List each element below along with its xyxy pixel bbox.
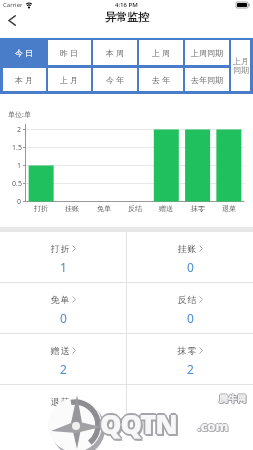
- staticText: 上 周: [152, 47, 171, 58]
- staticText: 打折: [34, 204, 48, 213]
- button[interactable]: 去 年: [139, 68, 183, 91]
- staticText: 腾牛网: [220, 393, 247, 404]
- button[interactable]: 上 周: [139, 40, 183, 65]
- button[interactable]: 上月 同期: [231, 40, 250, 91]
- button[interactable]: 打折: [0, 232, 126, 282]
- staticText: 抹零: [177, 345, 197, 356]
- staticText: 打折: [50, 243, 70, 254]
- staticText: 2: [60, 412, 67, 428]
- staticText: 腾牛网: [219, 393, 246, 404]
- staticText: 免单: [97, 204, 111, 213]
- staticText: QQTN: [99, 404, 176, 441]
- staticText: 抹零: [191, 204, 205, 213]
- button[interactable]: [4, 12, 20, 28]
- staticText: 挂账: [65, 204, 79, 213]
- button[interactable]: 免单: [0, 283, 126, 333]
- staticText: 退菜: [50, 396, 70, 407]
- button[interactable]: 本 月: [3, 68, 46, 91]
- button[interactable]: 赠送: [0, 334, 126, 384]
- staticText: 上周同期: [191, 48, 223, 58]
- staticText: .com: [197, 416, 229, 434]
- staticText: 腾牛网: [220, 394, 247, 405]
- staticText: .com: [197, 418, 229, 436]
- button[interactable]: 退菜: [0, 385, 126, 435]
- staticText: QQTN: [102, 407, 179, 444]
- button[interactable]: 去年同期: [185, 68, 229, 91]
- staticText: 4:16 PM: [115, 1, 138, 9]
- staticText: 0: [60, 310, 67, 326]
- staticText: 本 月: [15, 74, 34, 85]
- staticText: QQTN: [100, 405, 177, 442]
- staticText: QQTN: [98, 405, 175, 442]
- staticText: 0: [187, 259, 194, 275]
- staticText: 去 年: [152, 74, 171, 85]
- staticText: .com: [198, 417, 230, 435]
- staticText: 退菜: [222, 204, 236, 213]
- staticText: 1.5: [12, 143, 22, 153]
- staticText: 异常监控: [105, 10, 149, 24]
- staticText: QQTN: [102, 405, 179, 442]
- staticText: 2: [187, 361, 194, 377]
- button[interactable]: 今 日: [3, 40, 46, 65]
- staticText: 腾牛网: [218, 393, 245, 404]
- staticText: QQTN: [99, 406, 176, 443]
- staticText: 0: [17, 197, 22, 207]
- staticText: 2: [60, 361, 67, 377]
- staticText: 赠送: [50, 345, 70, 356]
- staticText: 挂账: [177, 243, 197, 254]
- staticText: QQTN: [100, 407, 177, 444]
- staticText: 昨 日: [60, 47, 79, 58]
- staticText: 单位:单: [8, 110, 31, 120]
- staticText: 赠送: [159, 204, 173, 213]
- staticText: 腾牛网: [219, 394, 246, 405]
- staticText: QQTN: [101, 404, 178, 441]
- button[interactable]: 挂账: [127, 232, 253, 282]
- staticText: 反结: [128, 204, 142, 213]
- staticText: 1: [60, 259, 67, 275]
- staticText: Carrier: [3, 1, 23, 9]
- staticText: 2: [17, 125, 22, 135]
- staticText: 本 周: [106, 47, 125, 58]
- button[interactable]: 抹零: [127, 334, 253, 384]
- button[interactable]: 昨 日: [48, 40, 91, 65]
- staticText: .com: [196, 417, 228, 435]
- button[interactable]: 本 周: [93, 40, 137, 65]
- staticText: 上月 同期: [233, 56, 249, 75]
- button[interactable]: 今 年: [93, 68, 137, 91]
- staticText: 免单: [50, 294, 70, 305]
- staticText: QQTN: [100, 403, 177, 440]
- staticText: 反结: [177, 294, 197, 305]
- staticText: 上 月: [60, 74, 79, 85]
- button[interactable]: 上周同期: [185, 40, 229, 65]
- staticText: 0.5: [12, 179, 22, 189]
- staticText: 今 年: [106, 74, 125, 85]
- staticText: 1: [17, 161, 22, 171]
- staticText: .com: [197, 417, 229, 435]
- button[interactable]: [127, 385, 253, 435]
- staticText: 今 日: [15, 47, 34, 58]
- staticText: .com: [198, 418, 230, 436]
- staticText: 0: [187, 310, 194, 326]
- button[interactable]: 上 月: [48, 68, 91, 91]
- staticText: 腾牛网: [219, 392, 246, 403]
- button[interactable]: 反结: [127, 283, 253, 333]
- staticText: 去年同期: [191, 75, 223, 85]
